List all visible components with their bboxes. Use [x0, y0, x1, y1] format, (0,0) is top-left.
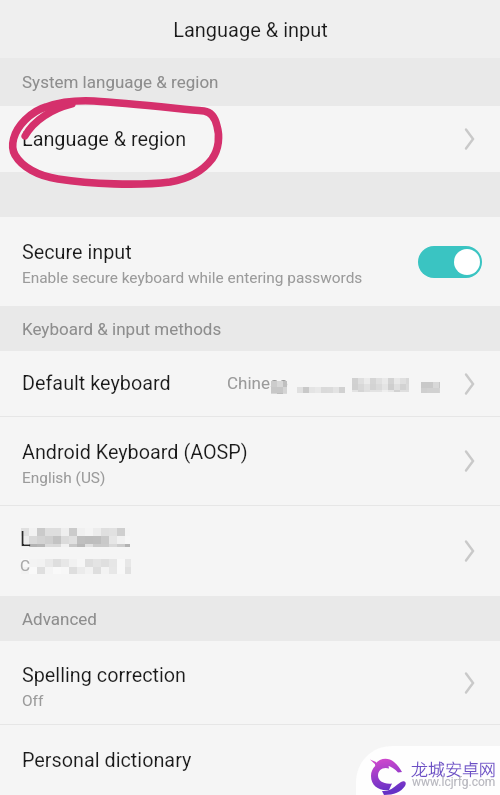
button[interactable]: Secure input toggle — [418, 246, 482, 278]
staticText: Spelling correction — [22, 664, 187, 687]
staticText: Android Keyboard (AOSP) — [22, 441, 248, 464]
staticText: Off — [22, 692, 44, 710]
staticText: System language & region — [22, 72, 219, 92]
staticText: Keyboard & input methods — [22, 319, 222, 339]
staticText: 龙城安卓网 — [411, 756, 496, 781]
button[interactable]: L — [0, 506, 500, 596]
staticText: Chinese — [227, 373, 288, 393]
button[interactable]: Spelling correction — [0, 641, 500, 724]
staticText: Default keyboard — [22, 372, 171, 395]
staticText: Language & input — [173, 18, 328, 41]
staticText: Advanced — [22, 609, 97, 629]
staticText: Secure input — [22, 241, 132, 264]
button[interactable]: Android Keyboard (AOSP) — [0, 417, 500, 505]
staticText: www.lcjrfg.com — [412, 775, 496, 789]
button[interactable]: Personal dictionary — [0, 725, 500, 795]
button[interactable]: Secure input — [0, 217, 500, 306]
staticText: L — [20, 528, 31, 551]
staticText: Language & region — [22, 128, 454, 151]
staticText: English (US) — [22, 469, 106, 487]
staticText: C — [20, 557, 31, 575]
button[interactable]: Default keyboard — [0, 351, 500, 416]
staticText: Personal dictionary — [22, 749, 454, 772]
staticText: Enable secure keyboard while entering pa… — [22, 269, 363, 287]
button[interactable]: Language & region — [0, 106, 500, 172]
